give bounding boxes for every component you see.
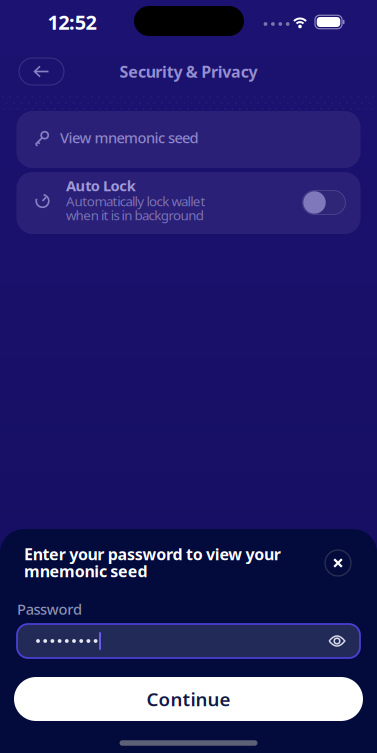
- staticText: Continue: [146, 687, 230, 711]
- button[interactable]: Back: [19, 58, 64, 85]
- button[interactable]: Continue: [14, 677, 363, 721]
- button[interactable]: View mnemonic seed: [16, 111, 360, 168]
- staticText: Auto Lock: [66, 176, 136, 195]
- staticText: Password: [17, 599, 82, 619]
- staticText: Automatically lock wallet: [66, 192, 205, 210]
- staticText: when it is in background: [66, 206, 204, 224]
- staticText: Enter your password to view your: [24, 543, 281, 565]
- staticText: Security & Privacy: [119, 61, 257, 82]
- button[interactable]: Show password: [328, 634, 346, 647]
- staticText: 12:52: [48, 9, 96, 35]
- button[interactable]: Auto Lock: [302, 190, 345, 214]
- staticText: mnemonic seed: [24, 560, 147, 582]
- staticText: View mnemonic seed: [60, 128, 198, 147]
- button[interactable]: Close: [325, 550, 351, 576]
